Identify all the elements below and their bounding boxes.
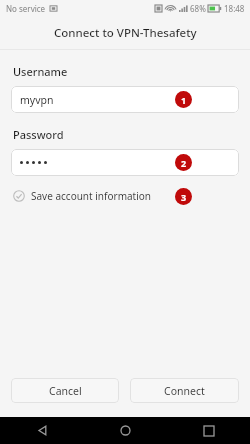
staticText: 2	[181, 157, 187, 169]
button[interactable]: myvpn	[11, 86, 239, 113]
button[interactable]: Recent apps	[167, 417, 250, 444]
staticText: 68%	[190, 3, 206, 14]
staticText: Save account information	[31, 189, 152, 203]
staticText: Password	[13, 127, 64, 142]
button[interactable]	[11, 149, 239, 176]
staticText: Cancel	[49, 384, 82, 398]
button[interactable]: Home	[84, 417, 167, 444]
staticText: myvpn	[20, 93, 54, 107]
button[interactable]: Cancel	[11, 378, 119, 403]
staticText: No service	[6, 3, 46, 14]
button[interactable]: Save account information	[11, 185, 154, 207]
staticText: 18:48	[224, 3, 245, 14]
staticText: Connect to VPN-Thesafety	[54, 25, 197, 41]
staticText: 3	[181, 191, 187, 203]
staticText: 1	[181, 94, 187, 106]
button[interactable]: Back	[0, 417, 84, 444]
staticText: Connect	[164, 384, 205, 398]
button[interactable]: Connect	[130, 378, 239, 403]
staticText: Username	[13, 64, 68, 79]
